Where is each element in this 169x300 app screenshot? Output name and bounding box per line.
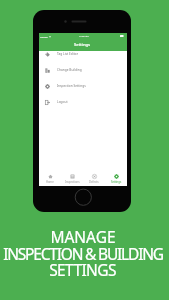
- staticText: 11:30 AM: [79, 35, 89, 38]
- staticText: Settings: [74, 42, 91, 48]
- staticText: Settings: [111, 180, 122, 184]
- staticText: Logout: [57, 100, 68, 104]
- staticText: Defects: [89, 180, 99, 184]
- staticText: INSPECTION & BUILDING: [3, 243, 163, 264]
- staticText: Inspections: [65, 180, 80, 184]
- button[interactable]: Defects: [83, 174, 105, 184]
- staticText: Home: [46, 180, 54, 184]
- staticText: MANAGE: [50, 226, 116, 247]
- staticText: Change Building: [57, 68, 82, 72]
- staticText: SETTINGS: [49, 259, 116, 280]
- staticText: Carrier: [40, 35, 48, 38]
- staticText: Tag List Editor: [57, 52, 79, 56]
- button[interactable]: Home: [39, 174, 61, 184]
- button[interactable]: Tag List Editor: [39, 46, 127, 62]
- staticText: Inspection Settings: [57, 84, 86, 88]
- button[interactable]: Inspections: [61, 174, 83, 184]
- button[interactable]: Logout: [39, 94, 127, 110]
- button[interactable]: Inspection Settings: [39, 78, 127, 94]
- button[interactable]: Change Building: [39, 62, 127, 78]
- button[interactable]: Settings: [105, 174, 127, 184]
